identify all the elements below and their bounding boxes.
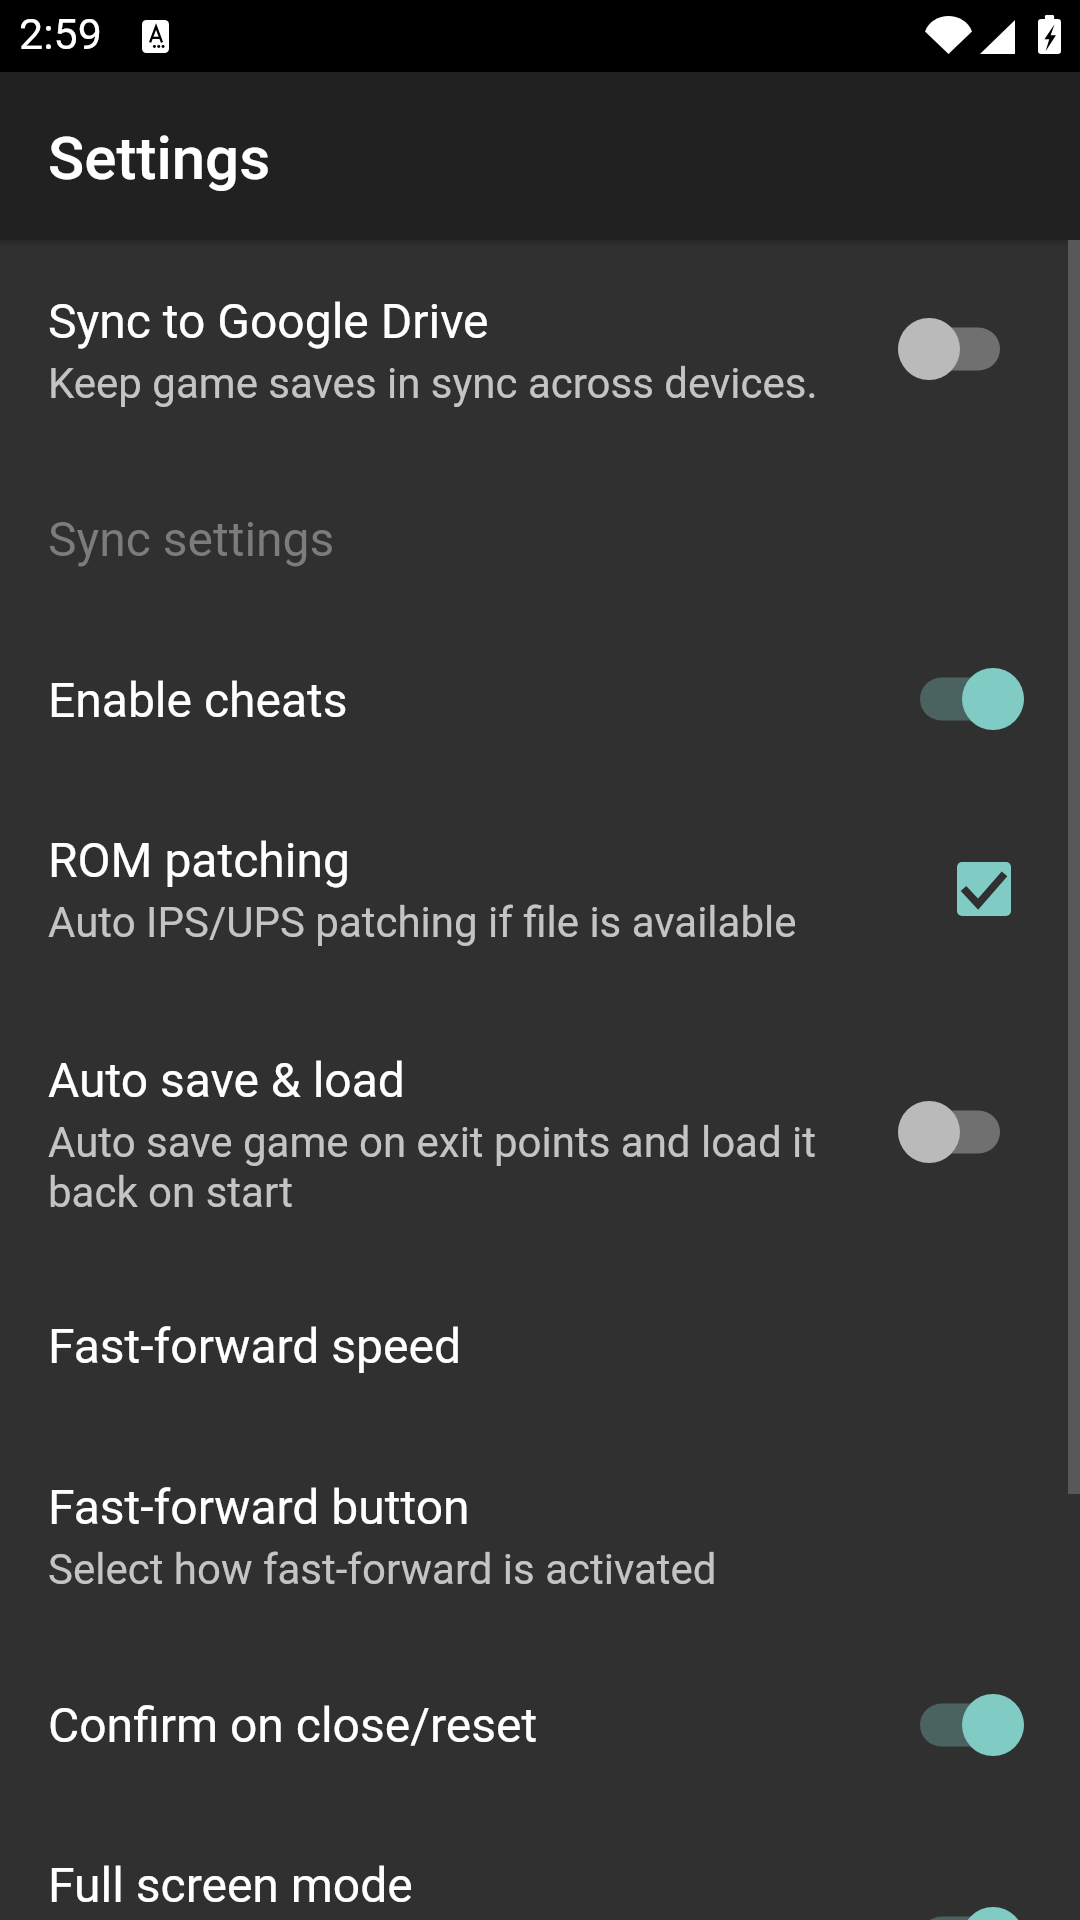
button[interactable]: Sync to Google Drive <box>0 240 1080 458</box>
button[interactable]: Switch, on <box>898 667 1024 731</box>
button[interactable]: Switch, off <box>898 1100 1024 1164</box>
button[interactable]: Switch, on <box>898 1906 1024 1920</box>
button[interactable]: Full screen mode <box>0 1805 1080 1920</box>
button[interactable]: Fast-forward button <box>0 1426 1080 1644</box>
button[interactable]: Auto save & load <box>0 999 1080 1265</box>
staticText: Enable cheats <box>48 672 348 728</box>
button[interactable]: Confirm on close/reset <box>0 1644 1080 1805</box>
staticText: Fast-forward speed <box>48 1318 461 1374</box>
button[interactable]: Switch, off <box>898 317 1024 381</box>
button[interactable]: Sync settings <box>0 458 1080 619</box>
staticText: Full screen mode <box>48 1857 413 1913</box>
staticText: Keep game saves in sync across devices. <box>48 359 818 408</box>
staticText: 2:59 <box>19 9 102 59</box>
staticText: Auto IPS/UPS patching if file is availab… <box>48 898 797 947</box>
staticText: Sync settings <box>48 511 335 567</box>
button[interactable]: Switch, on <box>898 1693 1024 1757</box>
staticText: Sync to Google Drive <box>48 293 489 349</box>
staticText: Select how fast-forward is activated <box>48 1545 717 1594</box>
staticText: Auto save game on exit points and load i… <box>48 1118 890 1217</box>
staticText: Fast-forward button <box>48 1479 470 1535</box>
staticText: Settings <box>48 123 271 193</box>
button[interactable]: ROM patching, checked <box>957 862 1011 916</box>
staticText: Confirm on close/reset <box>48 1697 538 1753</box>
button[interactable]: Fast-forward speed <box>0 1265 1080 1426</box>
button[interactable]: ROM patching <box>0 779 1080 999</box>
staticText: ROM patching <box>48 832 350 888</box>
staticText: Auto save & load <box>48 1052 405 1108</box>
button[interactable]: Enable cheats <box>0 619 1080 779</box>
